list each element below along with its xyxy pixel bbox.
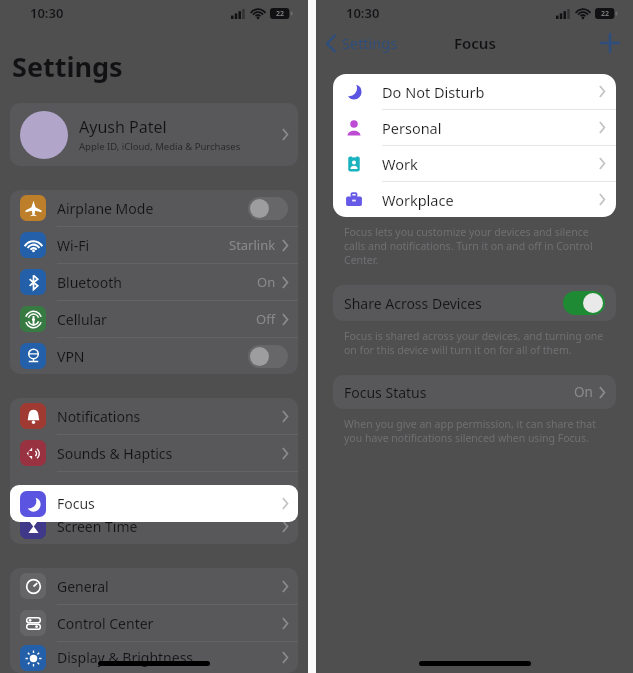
staticText: Settings <box>12 48 123 85</box>
staticText: When you give an app permission, it can … <box>344 417 605 445</box>
staticText: Personal <box>382 118 442 138</box>
button[interactable]: Ayush Patel <box>10 103 298 166</box>
button[interactable]: General <box>10 568 298 605</box>
button[interactable]: VPN <box>10 338 298 374</box>
button[interactable]: Focus Status <box>333 375 616 409</box>
staticText: On <box>574 383 593 401</box>
button[interactable]: Cellular <box>10 301 298 338</box>
staticText: 22 <box>601 9 610 19</box>
staticText: Airplane Mode <box>57 199 154 218</box>
staticText: Bluetooth <box>57 273 122 292</box>
button[interactable]: Work <box>333 146 616 182</box>
button[interactable]: Do Not Disturb <box>333 74 616 110</box>
staticText: Control Center <box>57 614 154 633</box>
button[interactable]: Screen Time <box>10 508 298 544</box>
staticText: Apple ID, iCloud, Media & Purchases <box>79 140 241 153</box>
staticText: Notifications <box>57 407 141 426</box>
staticText: Workplace <box>382 190 454 210</box>
staticText: Wi-Fi <box>57 236 90 255</box>
staticText: Starlink <box>229 236 276 254</box>
button[interactable]: Personal <box>333 110 616 146</box>
button[interactable]: Airplane Mode <box>10 190 298 227</box>
staticText: General <box>57 577 109 596</box>
staticText: Focus <box>57 494 95 513</box>
button[interactable]: Settings <box>326 33 404 53</box>
button[interactable]: Display & Brightness <box>10 642 298 673</box>
staticText: Display & Brightness <box>57 648 194 667</box>
staticText: 22 <box>276 9 285 19</box>
staticText: VPN <box>57 347 85 366</box>
button[interactable]: Sounds & Haptics <box>10 435 298 472</box>
button[interactable]: Wi-Fi <box>10 227 298 264</box>
staticText: 10:30 <box>30 4 64 22</box>
staticText: Off <box>256 310 276 328</box>
staticText: 10:30 <box>346 4 380 22</box>
staticText: Ayush Patel <box>79 116 167 138</box>
staticText: Share Across Devices <box>344 294 482 313</box>
button[interactable]: Add Focus <box>597 30 623 56</box>
button[interactable]: Notifications <box>10 398 298 435</box>
staticText: Cellular <box>57 310 107 329</box>
staticText: Focus <box>454 33 496 53</box>
staticText: Screen Time <box>57 517 138 536</box>
staticText: Do Not Disturb <box>382 82 485 102</box>
staticText: Focus lets you customize your devices an… <box>344 225 605 267</box>
button[interactable]: Share Across Devices <box>333 285 616 321</box>
staticText: Focus Status <box>344 383 427 402</box>
button[interactable]: Focus <box>10 485 298 522</box>
button[interactable]: Workplace <box>333 182 616 217</box>
staticText: On <box>257 273 276 291</box>
staticText: Focus is shared across your devices, and… <box>344 329 605 357</box>
staticText: Sounds & Haptics <box>57 444 173 463</box>
staticText: Work <box>382 154 418 174</box>
staticText: Settings <box>342 33 398 53</box>
button[interactable]: Control Center <box>10 605 298 642</box>
button[interactable]: Bluetooth <box>10 264 298 301</box>
